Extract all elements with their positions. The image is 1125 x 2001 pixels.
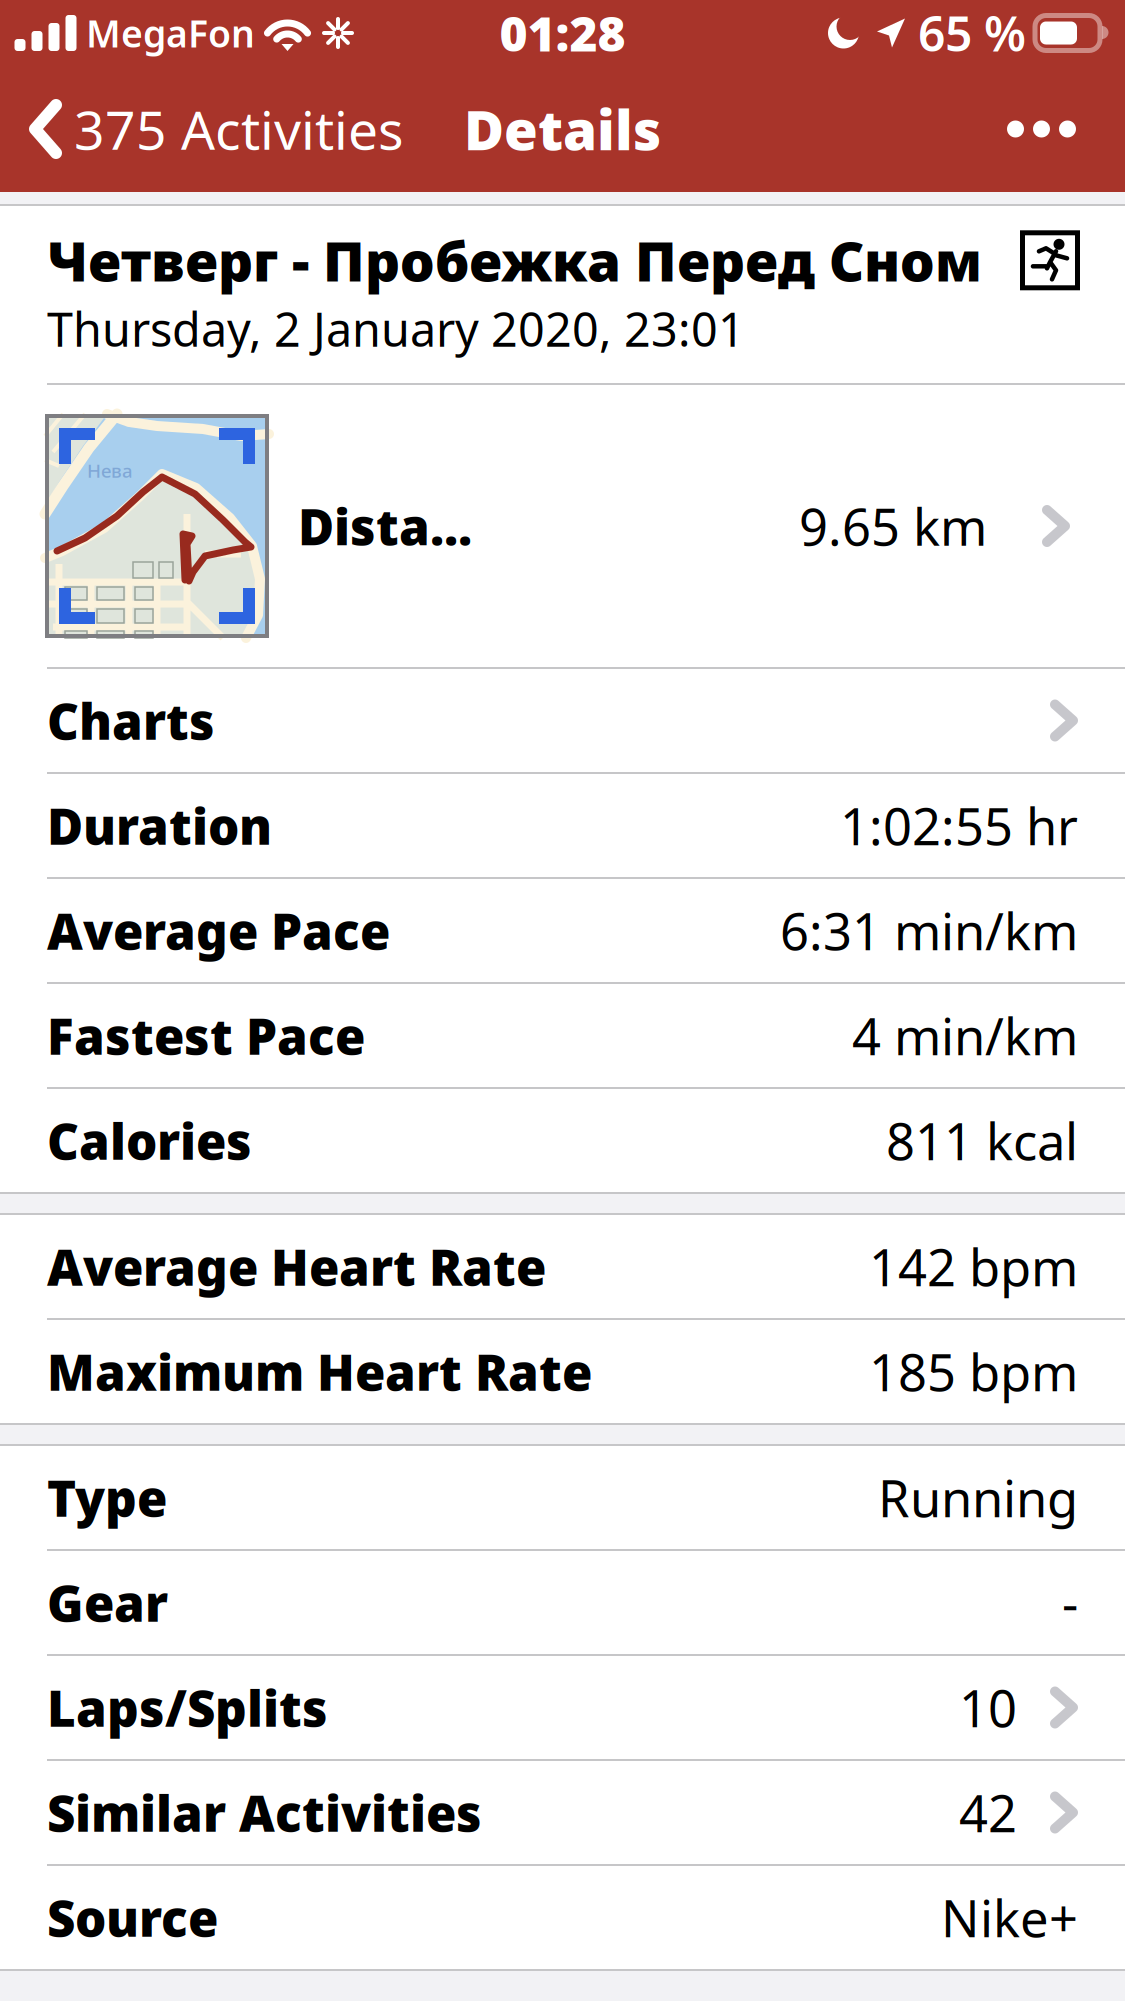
button[interactable]: Average Heart Rate: [0, 1215, 1125, 1318]
staticText: MegaFon: [86, 8, 255, 58]
staticText: Maximum Heart Rate: [47, 1339, 592, 1404]
button[interactable]: Average Pace: [0, 879, 1125, 982]
button[interactable]: Maximum Heart Rate: [0, 1320, 1125, 1423]
staticText: Running: [878, 1464, 1078, 1531]
staticText: 6:31 min/km: [780, 897, 1078, 964]
staticText: 01:28: [499, 1, 625, 65]
button[interactable]: Gear: [0, 1551, 1125, 1654]
staticText: Similar Activities: [47, 1780, 482, 1845]
staticText: Нева: [87, 458, 133, 483]
button[interactable]: Type: [0, 1446, 1125, 1549]
button[interactable]: 375 Activities: [0, 69, 418, 189]
button[interactable]: Charts: [0, 669, 1125, 772]
button[interactable]: Laps/Splits: [0, 1656, 1125, 1759]
staticText: Thursday, 2 January 2020, 23:01: [47, 298, 745, 360]
staticText: 42: [959, 1779, 1017, 1846]
staticText: Dista...: [298, 493, 472, 559]
staticText: Nike+: [941, 1884, 1078, 1951]
staticText: Charts: [47, 688, 215, 753]
staticText: 4 min/km: [852, 1002, 1078, 1069]
staticText: Average Heart Rate: [47, 1234, 546, 1299]
staticText: 185 bpm: [869, 1338, 1078, 1405]
staticText: Gear: [47, 1570, 168, 1635]
button[interactable]: Calories: [0, 1089, 1125, 1192]
staticText: Calories: [47, 1108, 252, 1173]
button[interactable]: Source: [0, 1866, 1125, 1969]
staticText: Fastest Pace: [47, 1003, 365, 1068]
staticText: 9.65 km: [799, 492, 987, 560]
staticText: 142 bpm: [869, 1233, 1078, 1300]
button[interactable]: Fastest Pace: [0, 984, 1125, 1087]
button[interactable]: More options: [967, 69, 1125, 189]
staticText: Laps/Splits: [47, 1675, 328, 1740]
staticText: -: [1062, 1569, 1078, 1636]
staticText: Average Pace: [47, 898, 390, 963]
staticText: 1:02:55 hr: [840, 792, 1078, 859]
staticText: Duration: [47, 793, 272, 858]
staticText: 65 %: [918, 1, 1026, 65]
button[interactable]: Нева: [0, 385, 1125, 667]
staticText: Source: [47, 1885, 218, 1950]
staticText: 375 Activities: [74, 94, 404, 164]
staticText: Details: [464, 93, 661, 165]
staticText: 10: [959, 1674, 1017, 1741]
staticText: Type: [47, 1465, 167, 1530]
staticText: Четверг - Пробежка Перед Сном: [47, 224, 982, 297]
button[interactable]: Duration: [0, 774, 1125, 877]
button[interactable]: Similar Activities: [0, 1761, 1125, 1864]
staticText: 811 kcal: [886, 1107, 1078, 1174]
